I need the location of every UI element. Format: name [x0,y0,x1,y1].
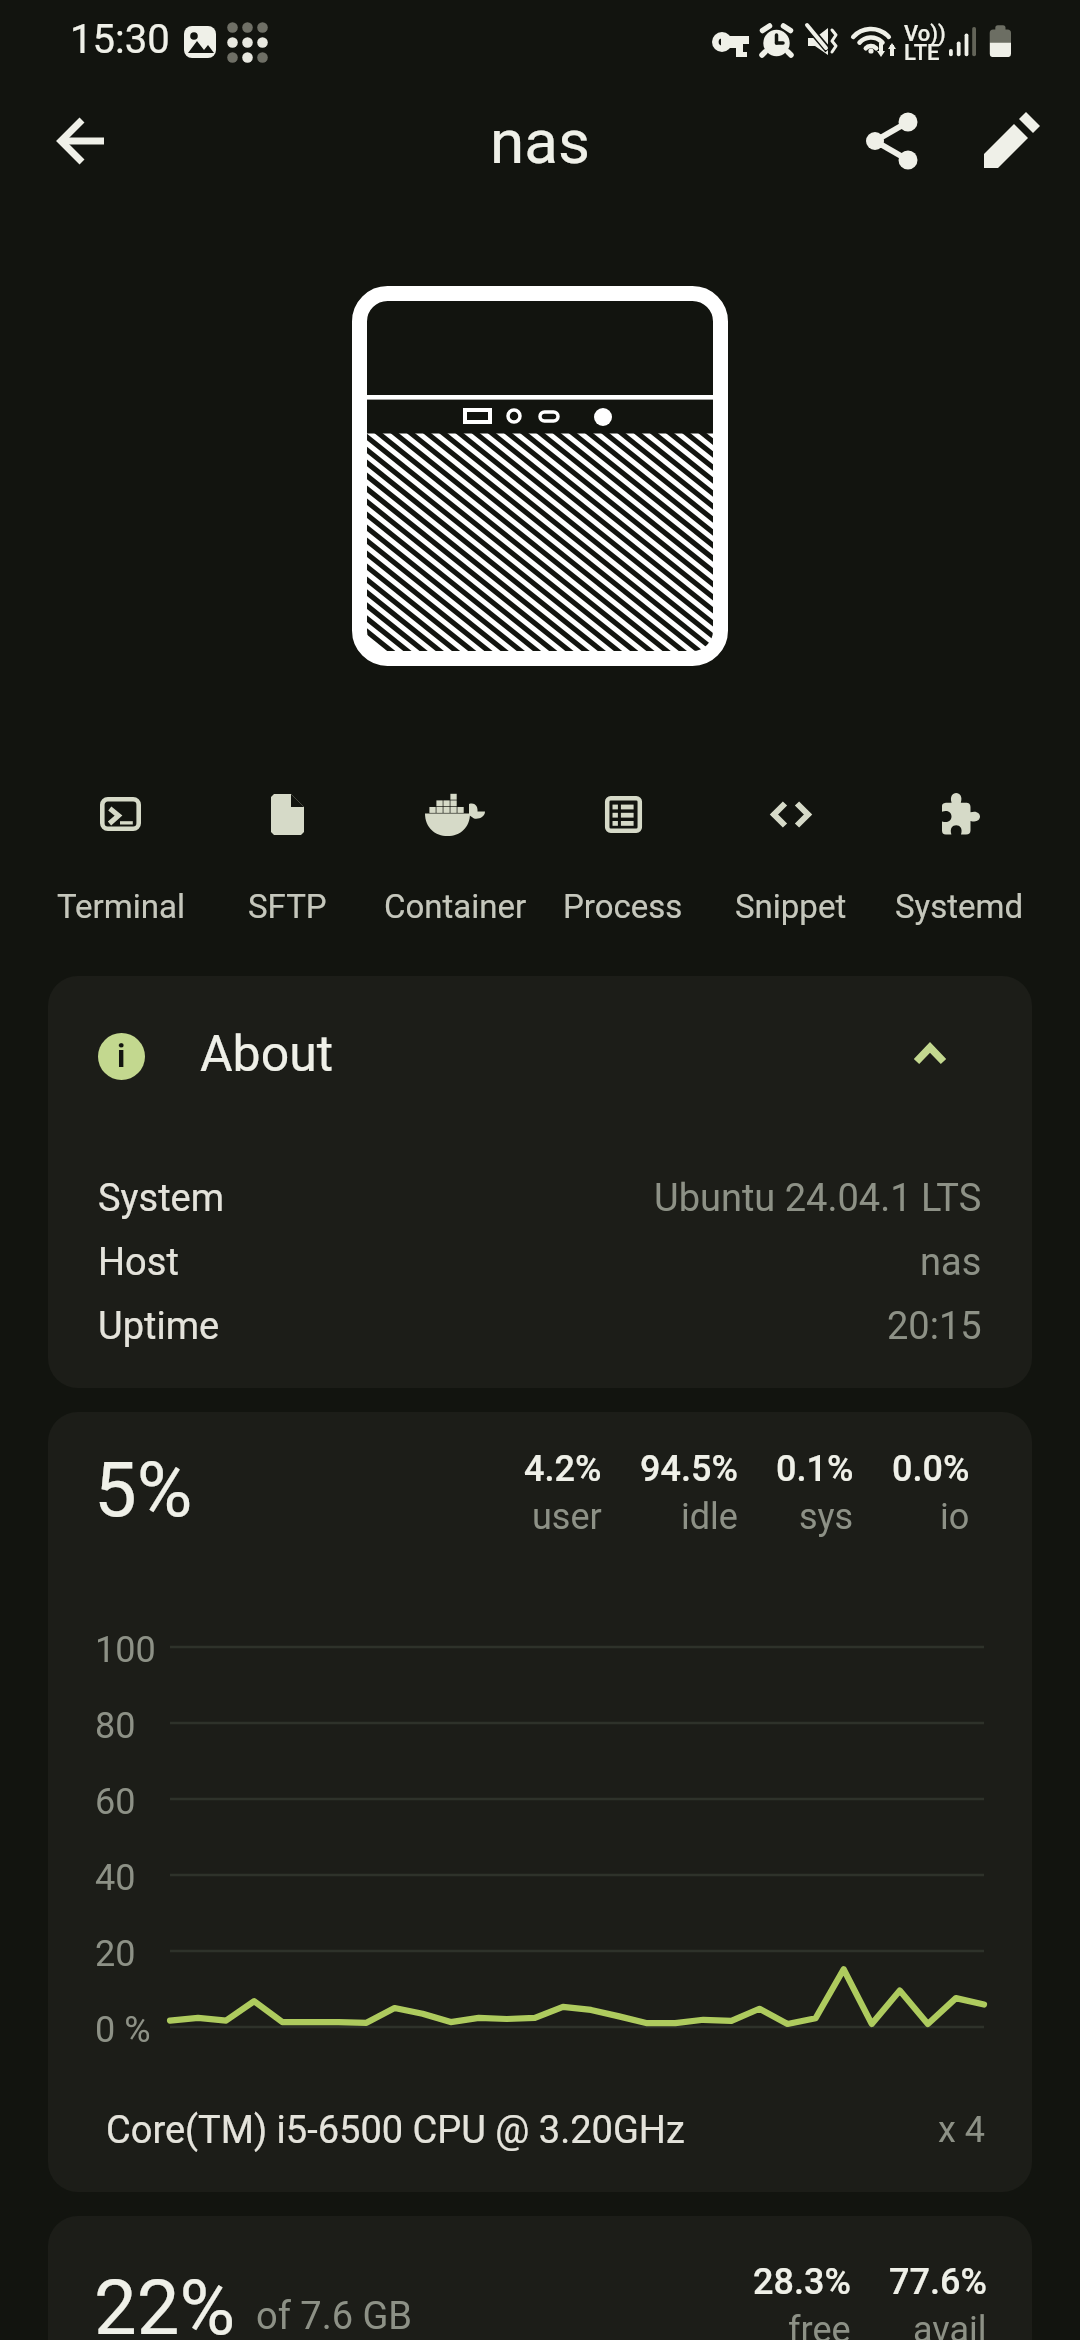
staticText: Vo)) [904,21,946,47]
button[interactable]: Collapse [896,1020,964,1088]
staticText: nas [0,105,1080,178]
staticText: Core(TM) i5-6500 CPU @ 3.20GHz [106,2108,685,2153]
staticText: 77.6% [889,2261,987,2303]
staticText: Ubuntu 24.04.1 LTS [654,1176,982,1221]
staticText: 0.0% [892,1448,970,1490]
button[interactable]: Process [539,782,707,939]
button[interactable]: i [48,976,1032,1136]
staticText: 4.2% [524,1448,602,1490]
staticText: 20 [95,1933,136,1975]
staticText: avail [913,2309,987,2340]
button[interactable]: Back [35,94,129,188]
staticText: 20:15 [887,1304,982,1349]
staticText: io [940,1496,970,1538]
staticText: Uptime [98,1304,220,1349]
button[interactable]: Systemd [875,782,1043,939]
button[interactable]: SFTP [204,782,371,939]
staticText: idle [681,1496,738,1538]
button[interactable]: Terminal [37,782,204,939]
staticText: 15:30 [70,16,170,63]
staticText: Snippet [735,887,847,926]
staticText: 22% [94,2263,236,2340]
staticText: Container [384,887,527,926]
staticText: Terminal [57,887,185,926]
staticText: System [98,1176,225,1221]
staticText: LTE [904,40,940,66]
button[interactable]: Share [845,94,939,188]
button[interactable]: Snippet [707,782,875,939]
staticText: About [200,1025,334,1084]
button[interactable]: Edit [964,94,1058,188]
staticText: Host [98,1240,179,1285]
staticText: 40 [95,1857,136,1899]
staticText: 94.5% [640,1448,738,1490]
staticText: free [788,2309,851,2340]
button[interactable]: Container [371,782,539,939]
staticText: i [117,1037,126,1075]
staticText: user [532,1496,602,1538]
staticText: 0 % [95,2009,151,2051]
staticText: Systemd [895,887,1024,926]
staticText: 5% [94,1445,193,1534]
button[interactable]: 5% [48,1412,1032,2192]
staticText: Process [563,887,683,926]
staticText: 60 [95,1781,136,1823]
staticText: x 4 [938,2109,986,2151]
staticText: SFTP [248,887,327,926]
staticText: of 7.6 GB [256,2294,413,2339]
staticText: 0.1% [776,1448,854,1490]
staticText: nas [920,1240,982,1285]
staticText: sys [799,1496,854,1538]
staticText: 28.3% [753,2261,851,2303]
staticText: 100 [95,1629,156,1671]
staticText: 80 [95,1705,136,1747]
button[interactable]: 22% [48,2216,1032,2340]
